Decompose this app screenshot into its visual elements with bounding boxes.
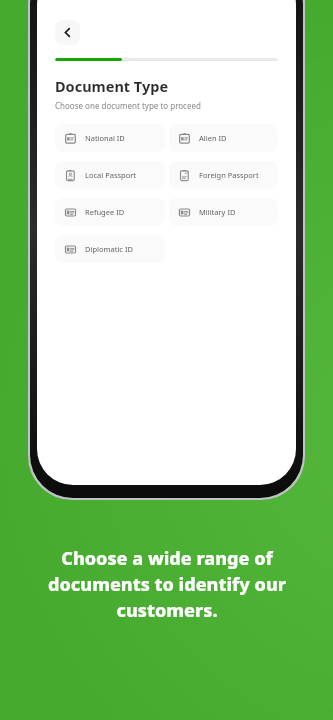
button[interactable]: Diplomatic ID	[55, 235, 165, 263]
staticText: Diplomatic ID	[85, 244, 133, 254]
button[interactable]: National ID	[55, 124, 165, 152]
staticText: National ID	[85, 133, 125, 143]
staticText: Choose one document type to proceed	[55, 100, 201, 111]
staticText: Military ID	[199, 207, 236, 217]
button[interactable]: Foreign Passport	[169, 161, 278, 189]
staticText: Local Passport	[85, 170, 137, 180]
staticText: Foreign Passport	[199, 170, 259, 180]
button[interactable]: Alien ID	[169, 124, 278, 152]
staticText: Alien ID	[199, 133, 227, 143]
staticText: Refugee ID	[85, 207, 125, 217]
button[interactable]: Back	[55, 20, 80, 45]
staticText: Choose a wide range of documents to iden…	[48, 546, 286, 623]
staticText: Document Type	[55, 76, 169, 96]
button[interactable]: Local Passport	[55, 161, 165, 189]
button[interactable]: Military ID	[169, 198, 278, 226]
button[interactable]: Refugee ID	[55, 198, 165, 226]
